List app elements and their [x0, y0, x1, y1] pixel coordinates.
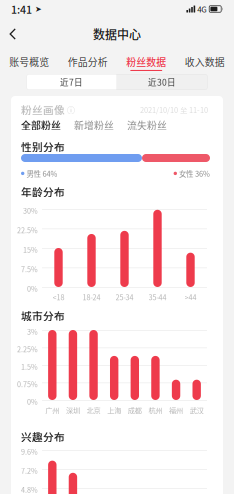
staticText: 3% [27, 326, 38, 337]
staticText: 成都 [128, 405, 142, 415]
staticText: 35-44 [148, 292, 166, 302]
staticText: 7.5% [21, 264, 38, 274]
staticText: 广州 [45, 405, 59, 415]
staticText: 1:41 [11, 1, 32, 17]
staticText: 0.75% [17, 379, 38, 389]
staticText: 近7日 [60, 76, 83, 88]
staticText: 9.6% [21, 446, 38, 457]
staticText: 收入数据 [185, 55, 225, 69]
staticText: 武汉 [190, 405, 204, 415]
staticText: 近30日 [148, 76, 176, 88]
button[interactable]: 账号概览 [0, 53, 58, 73]
staticText: <18 [52, 292, 64, 302]
button[interactable]: 粉丝数据 [117, 53, 175, 73]
staticText: 性别分布 [21, 139, 65, 154]
staticText: 2.25% [17, 344, 38, 354]
staticText: 年龄分布 [21, 184, 65, 199]
button[interactable]: 近30日 [116, 74, 207, 90]
staticText: 15% [23, 244, 38, 255]
staticText: >44 [184, 292, 196, 302]
staticText: 深圳 [66, 405, 80, 415]
staticText: 新增粉丝 [74, 118, 114, 132]
staticText: ⓘ [65, 104, 75, 115]
staticText: 7.2% [21, 465, 38, 476]
staticText: 4G [195, 3, 209, 15]
button[interactable]: 近7日 [26, 74, 116, 90]
staticText: 全部粉丝 [21, 118, 61, 132]
staticText: 4.8% [21, 484, 38, 494]
staticText: ➤ [32, 4, 42, 14]
staticText: 25-34 [115, 292, 133, 302]
staticText: 0% [27, 396, 38, 407]
staticText: 2021/10/10 至 11-10 [140, 104, 208, 115]
staticText: 杭州 [148, 405, 162, 415]
button[interactable]: 作品分析 [58, 53, 117, 73]
staticText: 30% [23, 205, 38, 216]
staticText: 女性 36% [177, 168, 210, 179]
staticText: 粉丝画像 [21, 102, 65, 117]
staticText: 上海 [107, 405, 121, 415]
staticText: 兴趣分布 [21, 429, 65, 444]
staticText: 北京 [87, 405, 101, 415]
staticText: 城市分布 [21, 308, 65, 323]
staticText: 0% [27, 283, 38, 294]
staticText: 男性 64% [24, 168, 57, 179]
staticText: 账号概览 [9, 55, 49, 69]
button[interactable]: 流失粉丝 [127, 118, 167, 132]
staticText: 22.5% [17, 225, 38, 235]
button[interactable]: Back [0, 23, 29, 45]
button[interactable]: 全部粉丝 [21, 118, 61, 132]
staticText: 粉丝数据 [126, 55, 166, 69]
button[interactable]: 收入数据 [175, 53, 234, 73]
button[interactable]: 新增粉丝 [74, 118, 114, 132]
staticText: 1.5% [21, 361, 38, 372]
staticText: 数据中心 [93, 25, 141, 43]
staticText: 福州 [169, 405, 183, 415]
staticText: 作品分析 [68, 55, 108, 69]
staticText: 流失粉丝 [127, 118, 167, 132]
staticText: 18-24 [82, 292, 100, 302]
